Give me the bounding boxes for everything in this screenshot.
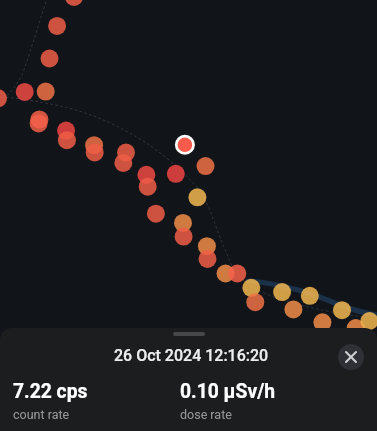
staticText: 0.10 µSv/h [180, 380, 276, 403]
staticText: 26 Oct 2024 12:16:20 [114, 346, 269, 365]
staticText: dose rate [180, 407, 232, 422]
button[interactable]: Close [338, 344, 364, 370]
staticText: 7.22 cps [13, 380, 88, 403]
staticText: count rate [13, 407, 70, 422]
